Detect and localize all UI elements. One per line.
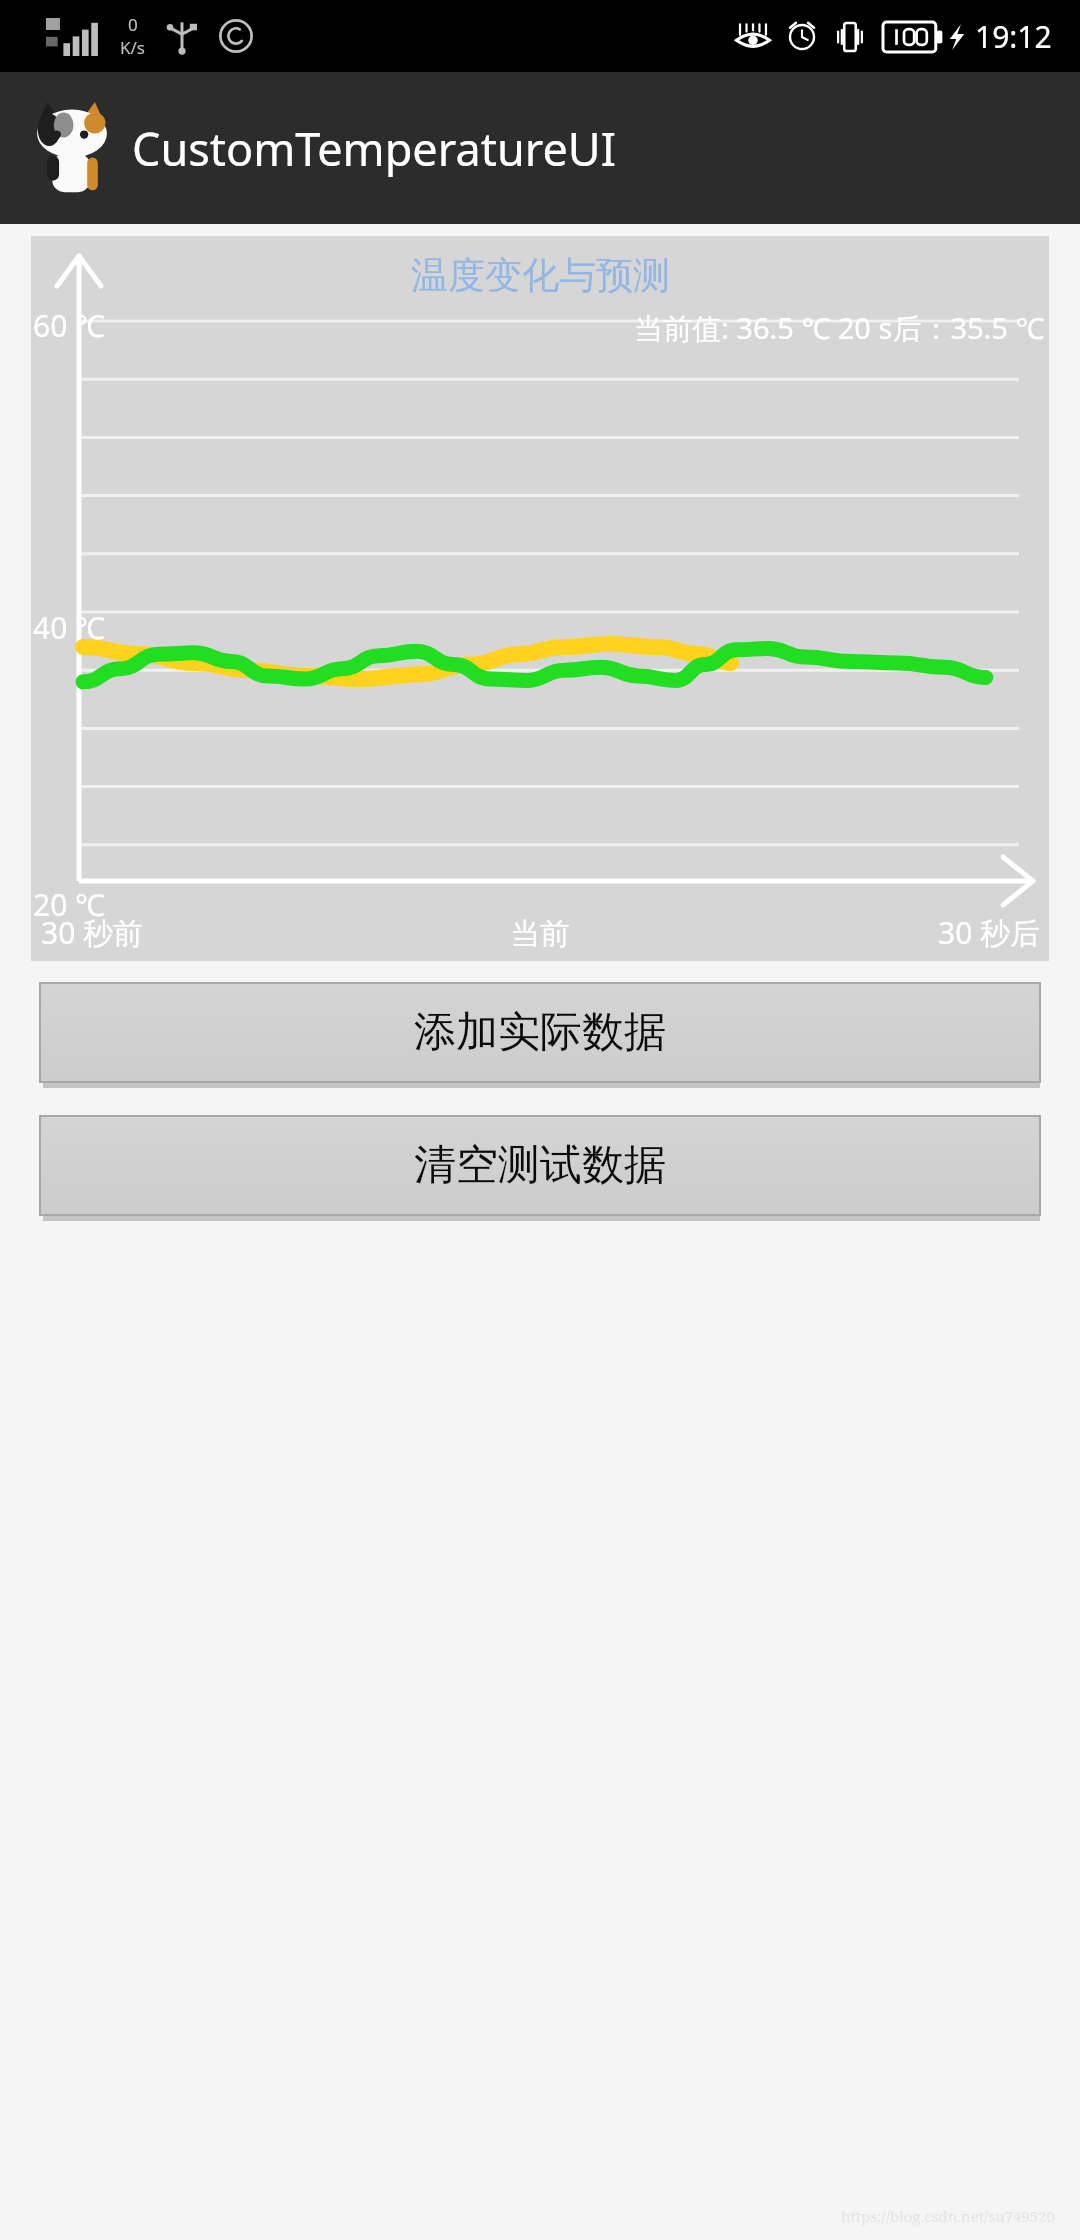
button[interactable]: 添加实际数据	[40, 983, 1040, 1088]
staticText: 19:12	[975, 16, 1052, 57]
staticText: 60 ℃	[33, 305, 105, 346]
staticText: 当前	[510, 915, 570, 953]
staticText: CustomTemperatureUI	[132, 118, 616, 179]
staticText: 当前值: 36.5 ℃ 20 s后：35.5 ℃	[634, 308, 1045, 348]
staticText: K/s	[120, 36, 145, 59]
staticText: 20 ℃	[33, 884, 105, 925]
staticText: 清空测试数据	[414, 1139, 666, 1192]
button[interactable]: 清空测试数据	[40, 1116, 1040, 1221]
staticText: https://blog.csdn.net/su749520	[841, 2206, 1056, 2226]
staticText: 40 ℃	[33, 607, 105, 648]
staticText: 温度变化与预测	[411, 252, 670, 299]
staticText: 30 秒前	[41, 912, 144, 953]
staticText: 添加实际数据	[414, 1006, 666, 1059]
staticText: 30 秒后	[938, 912, 1041, 953]
staticText: 0	[128, 13, 138, 36]
